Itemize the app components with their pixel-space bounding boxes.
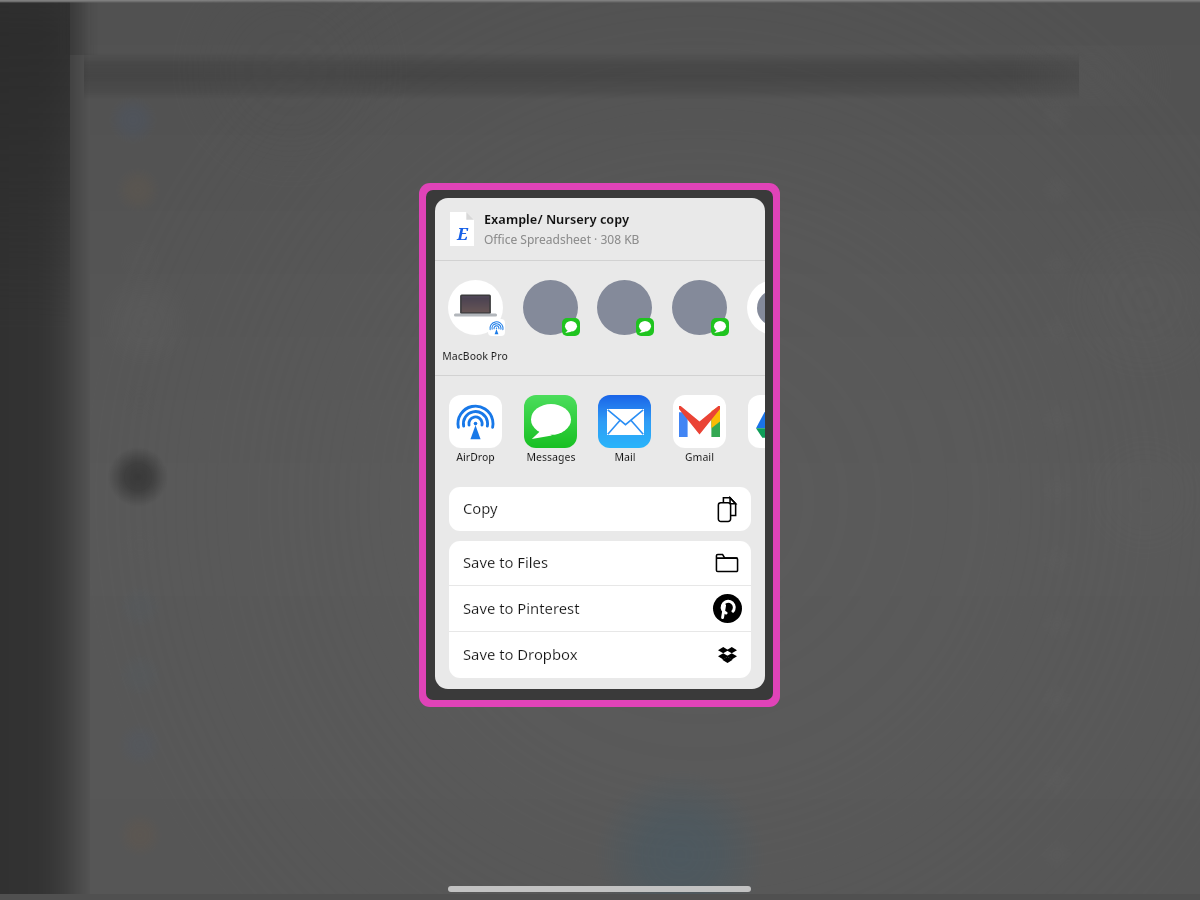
- staticText: MacBook Pro: [442, 349, 508, 363]
- button[interactable]: Save to Dropbox: [449, 632, 751, 678]
- button[interactable]: Contact: [523, 280, 578, 335]
- staticText: Example/ Nursery copy: [484, 211, 630, 228]
- button[interactable]: Gmail: [673, 395, 726, 464]
- staticText: Save to Dropbox: [463, 644, 578, 664]
- staticText: Save to Files: [463, 552, 549, 572]
- button[interactable]: Contact: [747, 280, 765, 335]
- staticText: E: [457, 222, 468, 245]
- staticText: Mail: [614, 450, 636, 464]
- staticText: Copy: [463, 498, 498, 518]
- staticText: Office Spreadsheet · 308 KB: [484, 231, 640, 247]
- button[interactable]: Copy: [449, 487, 751, 531]
- button[interactable]: Save to Files: [449, 541, 751, 585]
- button[interactable]: MacBook Pro: [448, 280, 503, 335]
- button[interactable]: E: [435, 198, 765, 260]
- button[interactable]: AirDrop: [449, 395, 502, 464]
- staticText: Messages: [526, 450, 576, 464]
- button[interactable]: Save to Pinterest: [449, 586, 751, 631]
- button[interactable]: Contact: [597, 280, 652, 335]
- button[interactable]: Messages: [524, 395, 577, 464]
- staticText: Save to Pinterest: [463, 598, 580, 618]
- staticText: AirDrop: [456, 450, 495, 464]
- button[interactable]: Contact: [672, 280, 727, 335]
- button[interactable]: App: [748, 395, 765, 448]
- button[interactable]: Mail: [598, 395, 651, 464]
- staticText: Gmail: [685, 450, 714, 464]
